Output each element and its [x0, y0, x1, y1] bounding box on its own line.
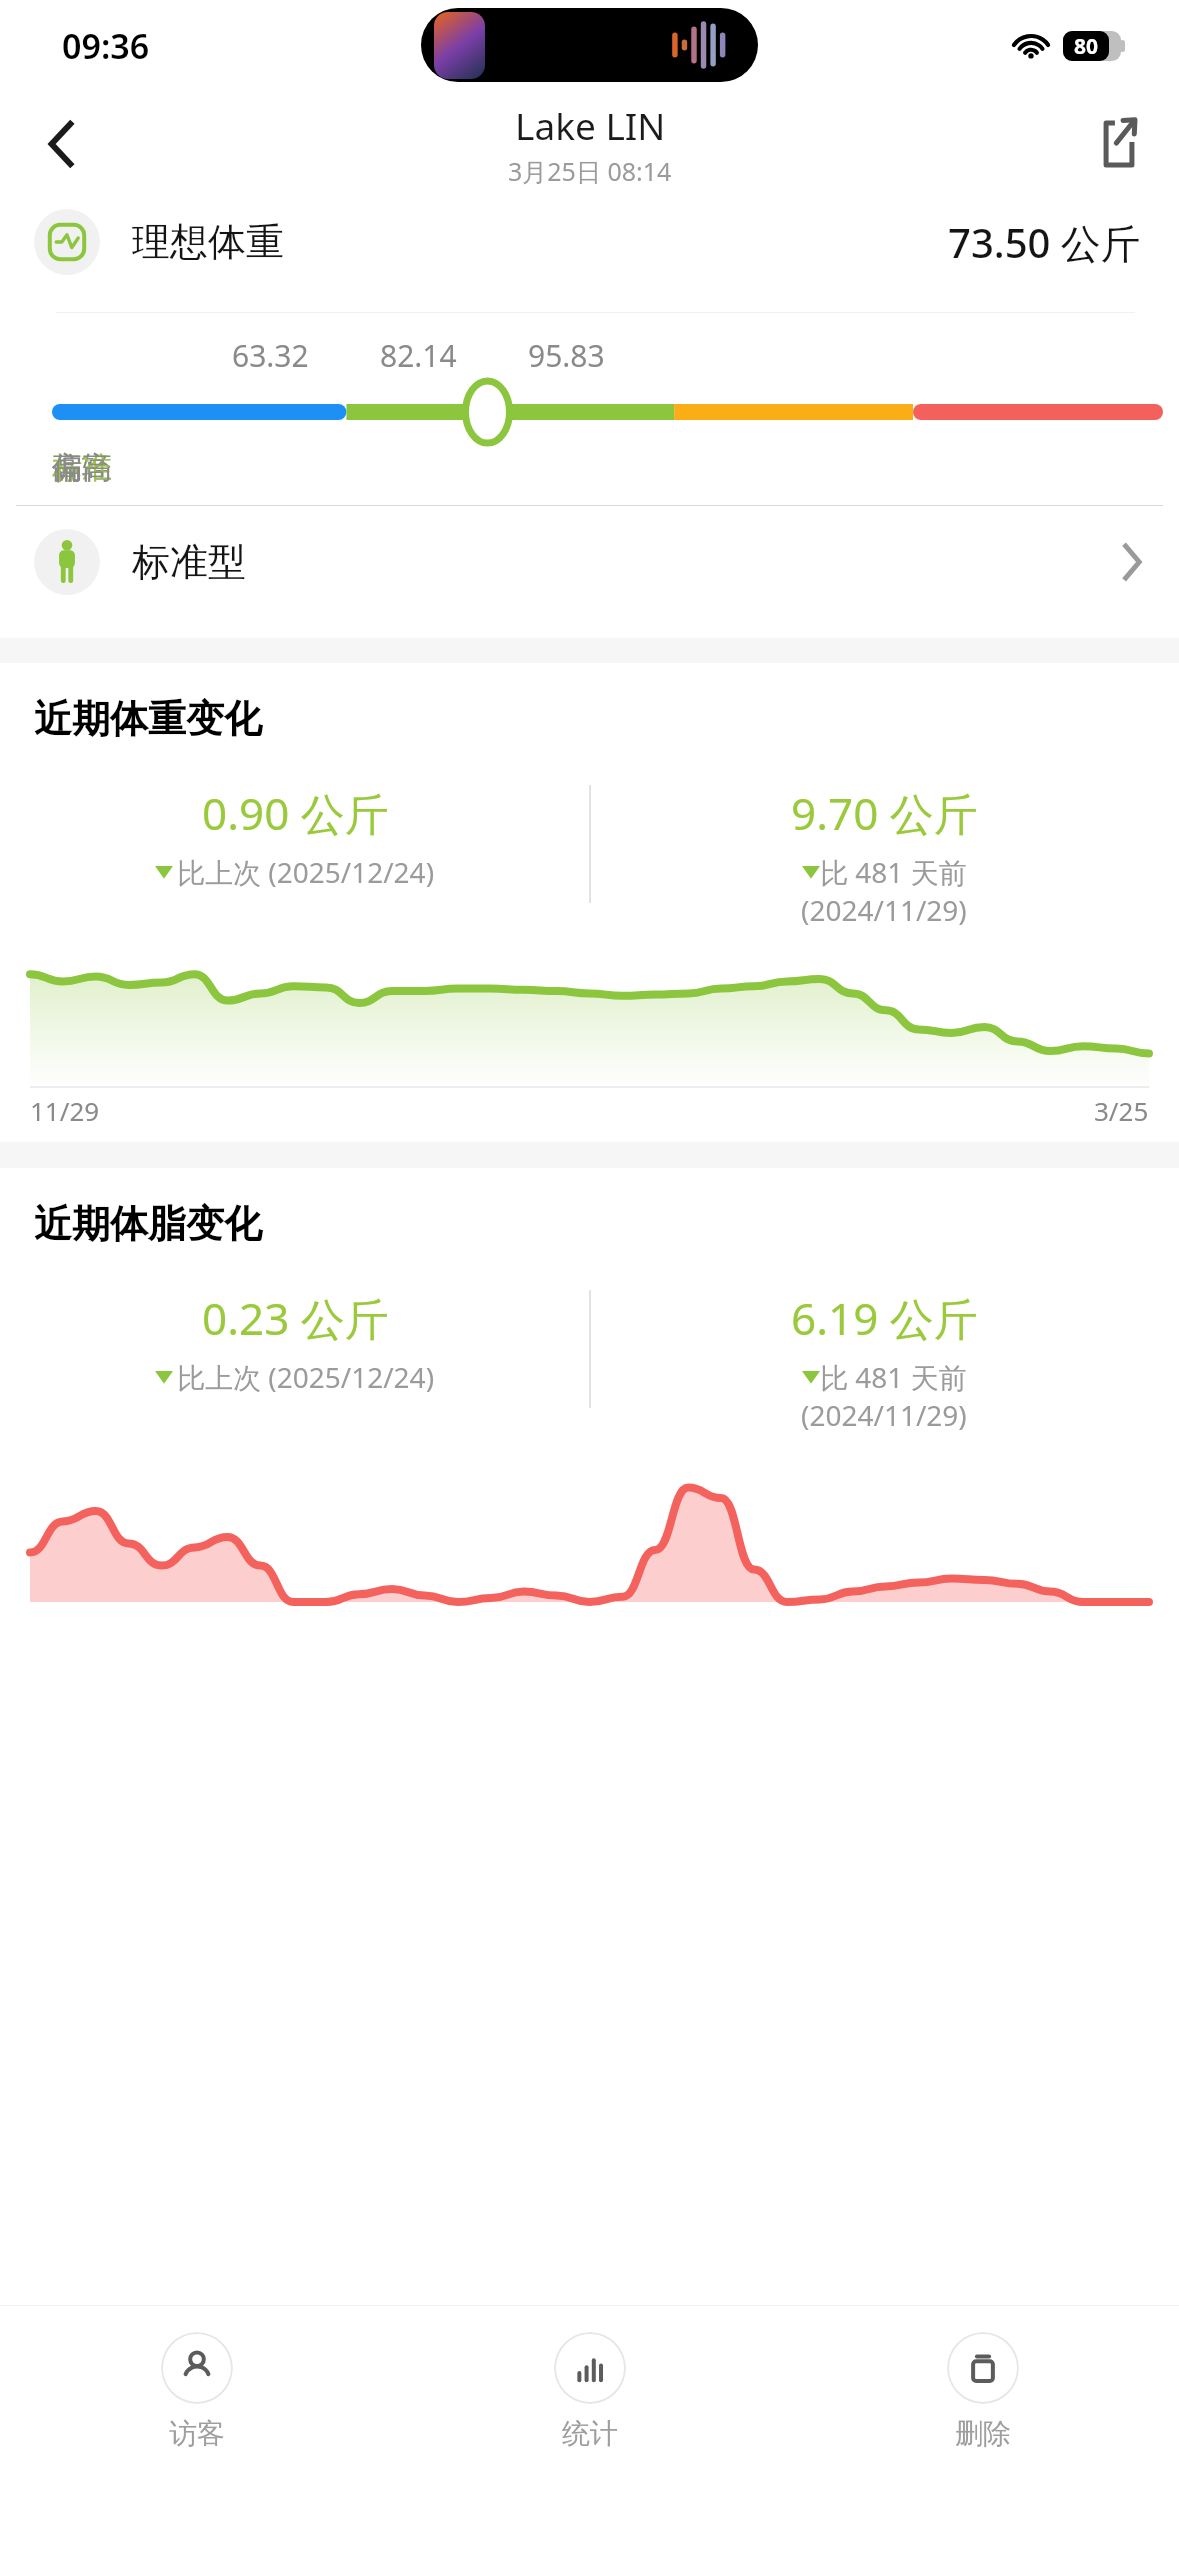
staticText: 63.32 — [232, 335, 309, 376]
staticText: 73.50 公斤 — [948, 215, 1141, 270]
button[interactable]: 标准型 — [0, 506, 1179, 618]
staticText: (2024/11/29) — [801, 1396, 967, 1434]
staticText: 80 — [1074, 32, 1099, 61]
staticText: 高 — [52, 449, 1163, 487]
staticText: 标准型 — [132, 538, 246, 586]
staticText: 访客 — [169, 2416, 225, 2451]
button[interactable]: 删除 — [786, 2328, 1179, 2455]
staticText: 0.23 公斤 — [202, 1288, 389, 1348]
staticText: 3月25日 08:14 — [508, 154, 672, 188]
staticText: 0.90 公斤 — [202, 783, 389, 843]
staticText: 近期体重变化 — [34, 695, 262, 743]
button[interactable]: Back — [34, 116, 90, 172]
staticText: 82.14 — [380, 335, 457, 376]
staticText: 标准 — [52, 449, 1163, 487]
staticText: 比 481 天前 — [820, 1358, 967, 1396]
button[interactable]: 理想体重 — [0, 192, 1179, 292]
staticText: 09:36 — [62, 23, 150, 69]
staticText: (2024/11/29) — [801, 891, 967, 929]
staticText: 比上次 (2025/12/24) — [177, 853, 435, 891]
staticText: 11/29 — [30, 1093, 100, 1128]
staticText: 3/25 — [1094, 1093, 1149, 1128]
staticText: 统计 — [562, 2416, 618, 2451]
button[interactable]: Share — [1089, 114, 1149, 174]
staticText: 偏轻 — [52, 449, 1163, 487]
staticText: 删除 — [955, 2416, 1011, 2451]
staticText: Lake LIN — [515, 100, 666, 150]
staticText: 95.83 — [528, 335, 605, 376]
staticText: 6.19 公斤 — [791, 1288, 978, 1348]
button[interactable]: 统计 — [393, 2328, 786, 2455]
staticText: 比 481 天前 — [820, 853, 967, 891]
staticText: 比上次 (2025/12/24) — [177, 1358, 435, 1396]
staticText: 偏高 — [52, 449, 1163, 487]
staticText: 理想体重 — [132, 218, 284, 266]
staticText: 9.70 公斤 — [791, 783, 978, 843]
button[interactable]: 访客 — [0, 2328, 393, 2455]
staticText: 近期体脂变化 — [34, 1200, 262, 1248]
